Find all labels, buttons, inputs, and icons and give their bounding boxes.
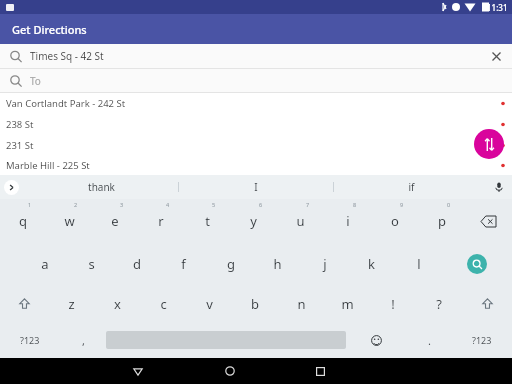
button[interactable]: w <box>46 199 92 243</box>
button[interactable]: if <box>334 175 488 199</box>
staticText: y <box>250 212 257 230</box>
button[interactable]: a <box>22 243 68 285</box>
staticText: ! <box>391 295 395 313</box>
button[interactable]: y <box>230 199 277 243</box>
staticText: if <box>408 180 415 194</box>
staticText: i <box>346 212 350 230</box>
button[interactable]: thank <box>24 175 178 199</box>
staticText: 6 <box>259 201 263 208</box>
button[interactable]: l <box>395 243 442 285</box>
staticText: o <box>391 212 399 230</box>
staticText: h <box>273 255 282 273</box>
button[interactable]: Van Cortlandt Park - 242 St <box>0 93 512 114</box>
staticText: v <box>206 295 213 313</box>
staticText: 4 <box>166 201 170 208</box>
button[interactable]: z <box>49 285 94 322</box>
staticText: a <box>41 255 49 273</box>
button[interactable]: ! <box>370 285 416 322</box>
button[interactable]: Clear <box>480 44 512 68</box>
button[interactable]: m <box>324 285 370 322</box>
button[interactable]: c <box>140 285 186 322</box>
staticText: m <box>341 295 354 313</box>
staticText: w <box>64 212 75 230</box>
staticText: 7 <box>306 201 310 208</box>
button[interactable]: n <box>278 285 324 322</box>
button[interactable]: ?123 <box>0 322 60 358</box>
button[interactable]: Backspace <box>465 199 512 243</box>
button[interactable]: To <box>0 69 512 92</box>
staticText: n <box>297 295 306 313</box>
staticText: Van Cortlandt Park - 242 St <box>6 97 494 110</box>
button[interactable]: b <box>232 285 278 322</box>
staticText: I <box>254 180 258 194</box>
button[interactable]: 238 St <box>0 114 512 135</box>
button[interactable]: r <box>138 199 184 243</box>
button[interactable]: d <box>114 243 160 285</box>
button[interactable]: h <box>254 243 301 285</box>
button[interactable]: Recents <box>275 358 366 384</box>
staticText: 231 St <box>6 139 494 152</box>
staticText: 3 <box>120 201 124 208</box>
button[interactable]: t <box>184 199 230 243</box>
button[interactable]: p <box>418 199 465 243</box>
staticText: Marble Hill - 225 St <box>6 159 494 172</box>
staticText: ? <box>436 295 442 313</box>
button[interactable]: Home <box>184 358 275 384</box>
button[interactable]: Shift <box>462 285 512 322</box>
staticText: u <box>296 212 305 230</box>
staticText: p <box>438 212 446 230</box>
staticText: g <box>227 255 235 273</box>
staticText: 9 <box>400 201 404 208</box>
button[interactable]: Times Sq - 42 St <box>0 44 512 68</box>
staticText: Get Directions <box>12 22 87 37</box>
button[interactable]: x <box>94 285 140 322</box>
button[interactable]: f <box>160 243 207 285</box>
staticText: Times Sq - 42 St <box>30 49 480 63</box>
button[interactable]: . <box>406 322 452 358</box>
staticText: 238 St <box>6 118 494 131</box>
staticText: z <box>68 295 75 313</box>
button[interactable]: q <box>0 199 46 243</box>
staticText: t <box>205 212 210 230</box>
button[interactable]: Shift <box>0 285 49 322</box>
staticText: b <box>251 295 259 313</box>
staticText: x <box>114 295 121 313</box>
staticText: thank <box>88 180 115 194</box>
button[interactable]: , <box>60 322 106 358</box>
staticText: 1 <box>28 201 32 208</box>
staticText: q <box>19 212 27 230</box>
staticText: 8 <box>353 201 357 208</box>
button[interactable]: v <box>186 285 232 322</box>
button[interactable]: s <box>68 243 114 285</box>
button[interactable]: i <box>324 199 371 243</box>
button[interactable]: e <box>92 199 138 243</box>
button[interactable]: I <box>179 175 333 199</box>
button[interactable]: ? <box>416 285 462 322</box>
staticText: c <box>160 295 167 313</box>
staticText: f <box>181 255 186 273</box>
button[interactable]: ?123 <box>452 322 512 358</box>
staticText: To <box>30 74 512 88</box>
button[interactable]: g <box>207 243 254 285</box>
staticText: j <box>323 255 327 273</box>
staticText: ?123 <box>472 334 492 346</box>
button[interactable]: k <box>348 243 395 285</box>
staticText: . <box>428 333 431 348</box>
button[interactable]: Voice input <box>491 179 507 195</box>
button[interactable]: Back <box>92 358 184 384</box>
staticText: k <box>368 255 375 273</box>
button[interactable]: Expand suggestions <box>4 180 19 195</box>
button[interactable]: u <box>277 199 324 243</box>
button[interactable]: Marble Hill - 225 St <box>0 156 512 175</box>
staticText: 0 <box>447 201 451 208</box>
button[interactable]: j <box>301 243 348 285</box>
button[interactable]: Swap origin and destination <box>474 129 504 159</box>
staticText: 11:31 <box>487 2 508 13</box>
button[interactable]: 231 St <box>0 135 512 156</box>
button[interactable]: Search <box>442 243 512 285</box>
button[interactable]: o <box>371 199 418 243</box>
staticText: , <box>82 333 85 348</box>
button[interactable]: Emoji <box>346 322 406 358</box>
staticText: ?123 <box>20 334 40 346</box>
